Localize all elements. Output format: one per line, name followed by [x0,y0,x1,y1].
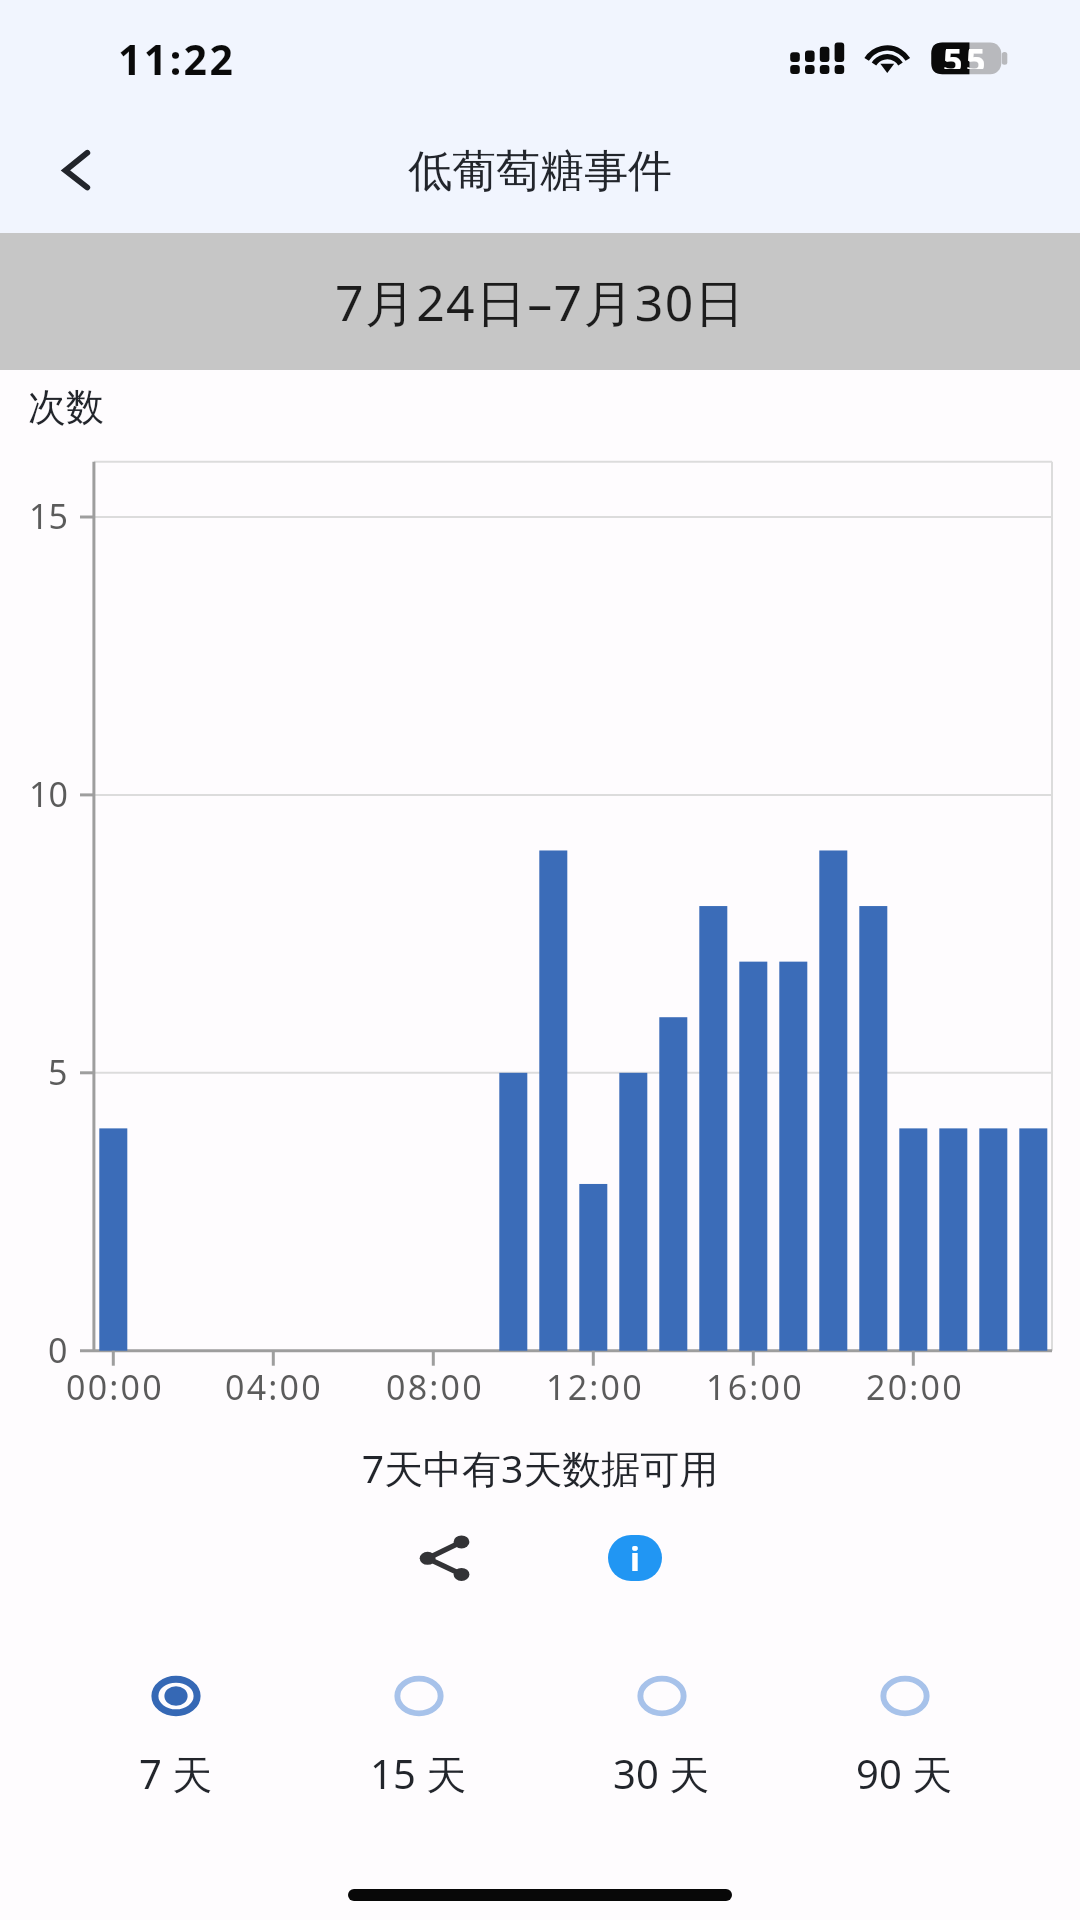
button[interactable]: Information [595,1518,675,1598]
button[interactable]: Back [30,131,110,211]
staticText: 15 天 [370,1746,467,1801]
staticText: 55 [943,37,990,69]
button[interactable]: 7 天 [54,1672,297,1801]
staticText: 低葡萄糖事件 [408,144,672,199]
staticText: 7月24日–7月30日 [335,268,746,336]
staticText: 15 [29,493,68,539]
button[interactable]: 90 天 [783,1672,1026,1801]
staticText: i [630,1536,640,1581]
button[interactable]: Share [404,1518,484,1598]
staticText: 5 [48,1049,68,1095]
staticText: 7 天 [139,1746,213,1801]
staticText: 7天中有3天数据可用 [0,1441,1080,1494]
staticText: 次数 [28,383,104,431]
button[interactable]: 7月24日–7月30日 [0,233,1080,370]
staticText: 16:00 [706,1364,804,1410]
staticText: 04:00 [225,1364,323,1410]
staticText: 30 天 [613,1746,710,1801]
staticText: 0 [48,1327,68,1373]
staticText: 90 天 [856,1746,953,1801]
staticText: 11:22 [118,31,236,87]
staticText: 00:00 [66,1364,164,1410]
staticText: 10 [29,771,68,817]
staticText: 20:00 [866,1364,964,1410]
button[interactable]: 15 天 [297,1672,540,1801]
staticText: 12:00 [546,1364,644,1410]
staticText: 08:00 [386,1364,484,1410]
button[interactable]: 30 天 [540,1672,783,1801]
